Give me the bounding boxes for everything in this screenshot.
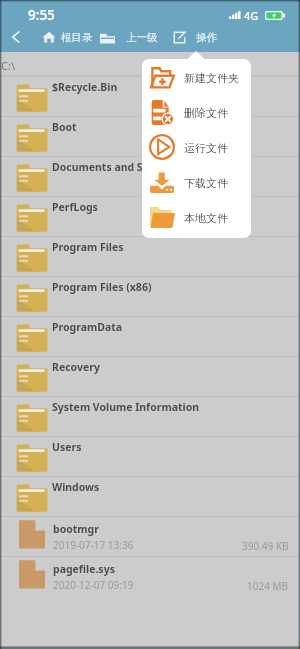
button[interactable]: 新建文件夹	[142, 59, 251, 94]
staticText: PerfLogs	[52, 200, 98, 214]
staticText: 根目录	[61, 31, 93, 44]
staticText: 390.49 KB	[242, 539, 289, 553]
button[interactable]: Users	[0, 436, 300, 476]
staticText: 操作	[196, 31, 217, 44]
staticText: 下载文件	[184, 176, 228, 190]
staticText: pagefile.sys	[53, 562, 115, 576]
staticText: 运行文件	[184, 141, 228, 155]
staticText: C:\	[1, 58, 15, 73]
button[interactable]: ProgramData	[0, 316, 300, 356]
staticText: ProgramData	[52, 320, 123, 334]
button[interactable]: 删除文件	[142, 94, 251, 129]
staticText: Program Files (x86)	[52, 280, 152, 294]
button[interactable]: 下载文件	[142, 164, 251, 199]
button[interactable]: Recovery	[0, 356, 300, 396]
staticText: Documents and Settings	[52, 160, 180, 174]
button[interactable]: System Volume Information	[0, 396, 300, 436]
staticText: $Recycle.Bin	[52, 80, 118, 94]
button[interactable]: Windows	[0, 476, 300, 516]
button[interactable]: bootmgr	[0, 516, 300, 556]
button[interactable]: 本地文件	[142, 199, 251, 234]
staticText: 上一级	[126, 31, 158, 44]
button[interactable]: $Recycle.Bin	[0, 76, 300, 116]
button[interactable]: Program Files (x86)	[0, 276, 300, 316]
staticText: System Volume Information	[52, 400, 200, 414]
staticText: 新建文件夹	[184, 71, 239, 85]
button[interactable]: Program Files	[0, 236, 300, 276]
button[interactable]: Documents and Settings	[0, 156, 300, 196]
staticText: 2019-07-17 13:36	[53, 538, 134, 552]
staticText: Program Files	[52, 240, 124, 254]
staticText: 4G	[244, 8, 259, 22]
staticText: 2020-12-07 09:19	[53, 578, 134, 592]
button[interactable]: 根目录	[42, 30, 93, 44]
staticText: Recovery	[52, 360, 100, 374]
staticText: 9:55	[28, 6, 55, 22]
button[interactable]: Back	[4, 25, 28, 49]
staticText: 1024 MB	[247, 579, 289, 593]
staticText: 删除文件	[184, 106, 228, 120]
button[interactable]: pagefile.sys	[0, 556, 300, 596]
button[interactable]: 操作	[173, 31, 217, 44]
button[interactable]: Boot	[0, 116, 300, 156]
staticText: Boot	[52, 120, 77, 134]
staticText: Windows	[52, 480, 100, 494]
button[interactable]: 运行文件	[142, 129, 251, 164]
staticText: 本地文件	[184, 211, 228, 225]
staticText: bootmgr	[53, 522, 99, 536]
button[interactable]: PerfLogs	[0, 196, 300, 236]
staticText: Users	[52, 440, 82, 454]
other: Parent folder	[100, 32, 115, 44]
button[interactable]: Parent folder	[100, 31, 158, 44]
